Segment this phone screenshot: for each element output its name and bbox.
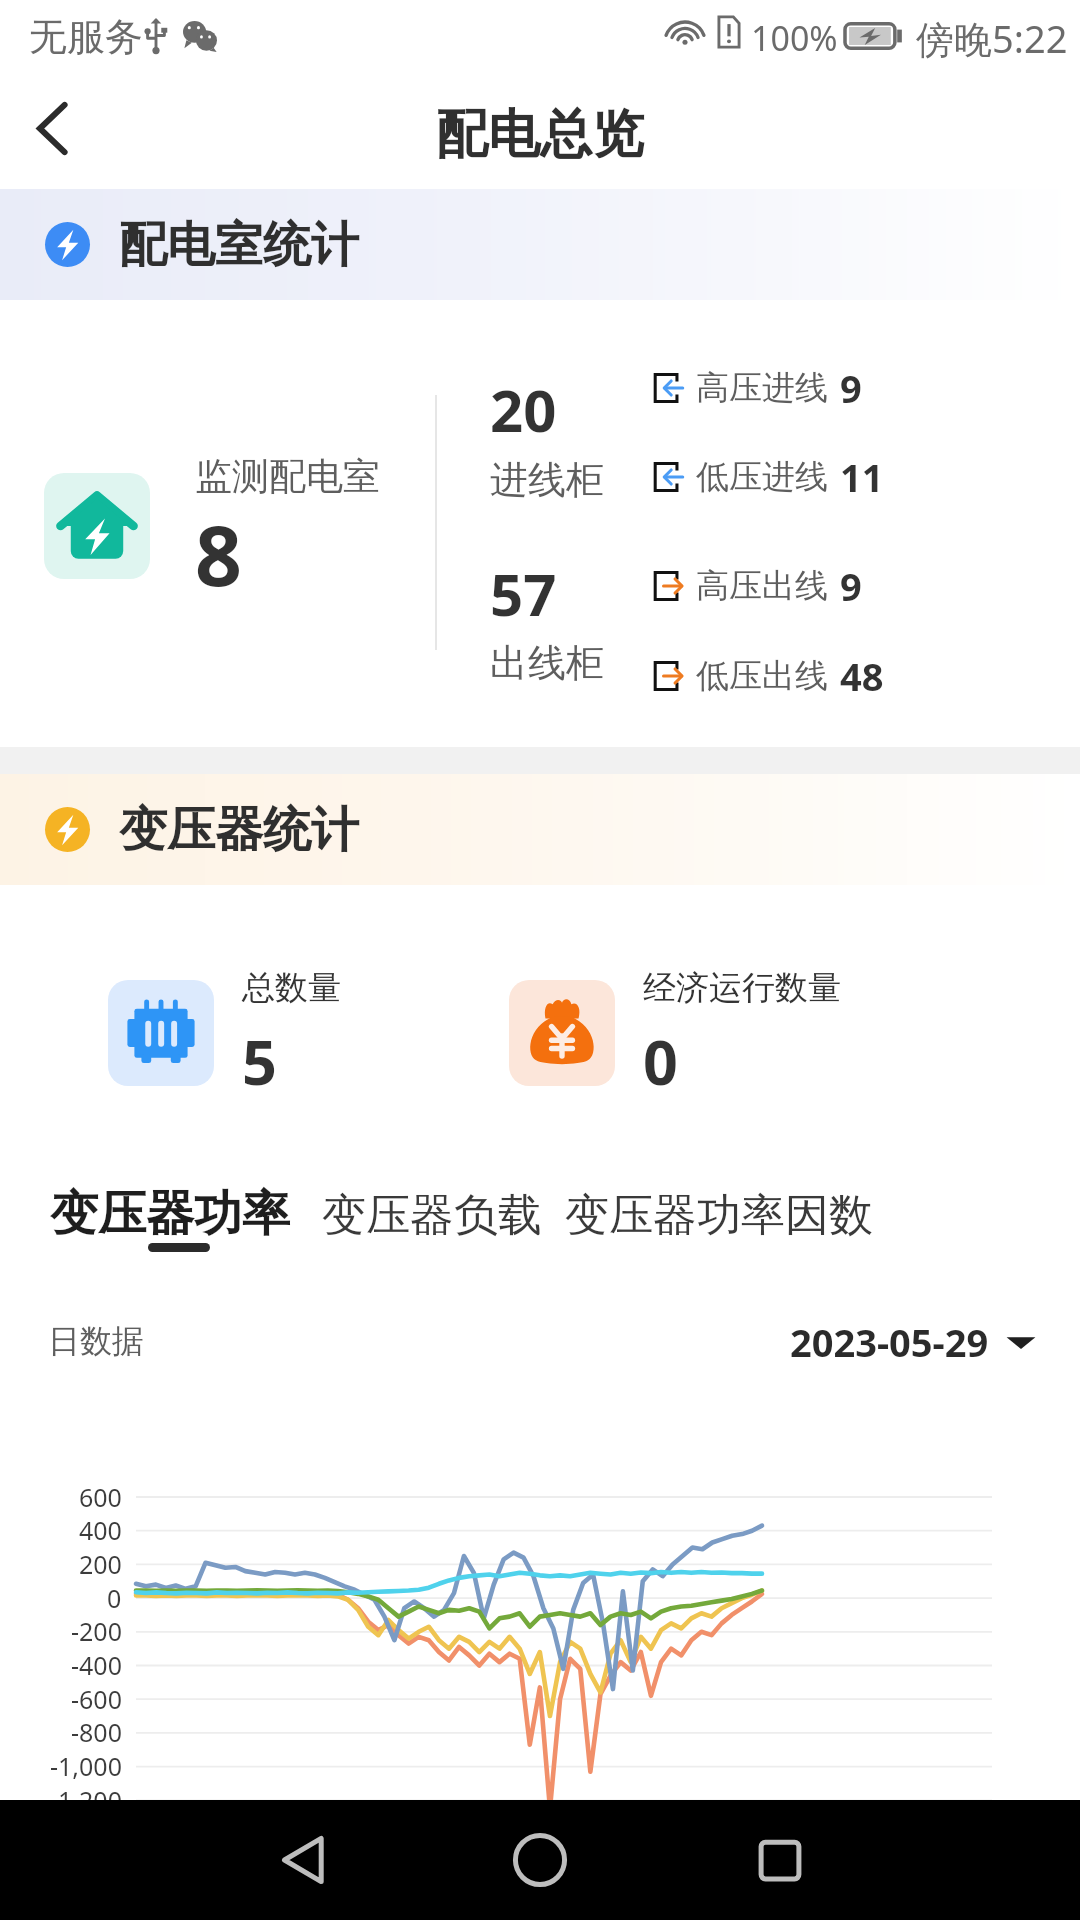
- staticText: 200: [79, 1547, 122, 1581]
- staticText: 48: [840, 650, 884, 702]
- staticText: 100%: [751, 15, 838, 61]
- staticText: -600: [71, 1682, 122, 1716]
- staticText: 2023-05-29: [790, 1316, 989, 1368]
- button[interactable]: 变压器负载: [322, 1188, 542, 1243]
- staticText: 9: [840, 362, 862, 414]
- staticText: 傍晚5:22: [916, 12, 1068, 64]
- staticText: 8: [195, 498, 242, 610]
- staticText: 出线柜: [490, 639, 604, 687]
- staticText: 11: [840, 451, 884, 503]
- staticText: 进线柜: [490, 456, 604, 504]
- staticText: 57: [490, 554, 557, 633]
- staticText: 配电总览: [436, 102, 644, 168]
- staticText: -1,200: [50, 1783, 122, 1817]
- staticText: -400: [71, 1648, 122, 1682]
- button[interactable]: Home: [490, 1810, 590, 1910]
- staticText: 0: [107, 1581, 122, 1615]
- staticText: 变压器功率: [50, 1184, 290, 1244]
- staticText: -200: [71, 1614, 122, 1648]
- staticText: 400: [79, 1513, 122, 1547]
- staticText: -800: [71, 1715, 122, 1749]
- staticText: 高压出线: [696, 565, 828, 607]
- button[interactable]: 变压器功率因数: [565, 1188, 873, 1243]
- staticText: 总数量: [242, 967, 341, 1009]
- staticText: 600: [79, 1480, 122, 1514]
- button[interactable]: 2023-05-29: [790, 1316, 1037, 1368]
- button[interactable]: Back: [0, 80, 110, 189]
- staticText: 0: [643, 1020, 678, 1103]
- staticText: 无服务: [29, 13, 143, 61]
- staticText: 经济运行数量: [643, 967, 841, 1009]
- staticText: 低压出线: [696, 655, 828, 697]
- staticText: 5: [242, 1020, 277, 1103]
- staticText: 监测配电室: [195, 453, 380, 500]
- staticText: 9: [840, 560, 862, 612]
- staticText: 日数据: [48, 1321, 144, 1361]
- button[interactable]: 变压器功率: [50, 1170, 300, 1270]
- staticText: 变压器统计: [119, 800, 359, 860]
- staticText: -1,000: [50, 1749, 122, 1783]
- staticText: 20: [490, 370, 557, 449]
- button[interactable]: Back: [255, 1810, 355, 1910]
- staticText: 高压进线: [696, 367, 828, 409]
- button[interactable]: Recents: [730, 1810, 830, 1910]
- staticText: 配电室统计: [119, 215, 359, 275]
- staticText: 低压进线: [696, 456, 828, 498]
